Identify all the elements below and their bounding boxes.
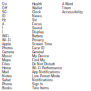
staticText: My Device: [32, 54, 49, 58]
staticText: News: [32, 14, 42, 18]
staticText: Off: [2, 6, 7, 10]
staticText: App Notifications: [32, 70, 60, 74]
staticText: Apple: [2, 42, 11, 46]
staticText: Face ID: [32, 46, 44, 50]
staticText: Do Not Disturb: [32, 62, 55, 66]
staticText: Music: [2, 54, 12, 58]
staticText: Hz: [2, 18, 6, 22]
staticText: Maps: [2, 58, 11, 62]
staticText: Siri: [32, 18, 37, 22]
staticText: I: [2, 26, 3, 30]
staticText: Photos: [2, 46, 13, 50]
staticText: Wallet: [32, 6, 42, 10]
staticText: Notifications: [32, 78, 53, 82]
staticText: A Word: [62, 2, 73, 6]
staticText: A: [2, 22, 4, 26]
staticText: Sign In: [32, 82, 43, 86]
staticText: Camera: [2, 50, 14, 54]
staticText: On: [2, 2, 7, 6]
staticText: Phone: [2, 82, 12, 86]
staticText: Files: [2, 62, 10, 66]
staticText: General: [32, 50, 44, 54]
staticText: Wi-Fi: [2, 38, 11, 42]
staticText: Low Power Mode: [32, 74, 60, 78]
staticText: Two Items: [32, 86, 49, 90]
staticText: Screen Time: [32, 42, 52, 46]
staticText: Accessibility: [62, 10, 83, 14]
staticText: Health: [32, 2, 42, 6]
staticText: Focus: [32, 22, 42, 26]
staticText: ID: [2, 14, 5, 18]
staticText: 5G: [2, 10, 6, 14]
staticText: Wi-Fi Performance: [32, 66, 62, 70]
staticText: Battery: [32, 34, 43, 38]
staticText: 1 item: [62, 6, 71, 10]
staticText: Books: [2, 86, 12, 90]
staticText: Find My: [32, 58, 45, 62]
staticText: Privacy: [32, 38, 44, 42]
staticText: Sound: [32, 26, 42, 30]
staticText: Home: [2, 66, 11, 70]
staticText: Notes: [2, 74, 12, 78]
staticText: Display: [32, 30, 44, 34]
staticText: Clock: [32, 10, 41, 14]
staticText: l: [2, 30, 3, 34]
staticText: Mail: [2, 70, 9, 74]
staticText: Safari: [2, 78, 11, 82]
staticText: WiFi: [2, 34, 9, 38]
